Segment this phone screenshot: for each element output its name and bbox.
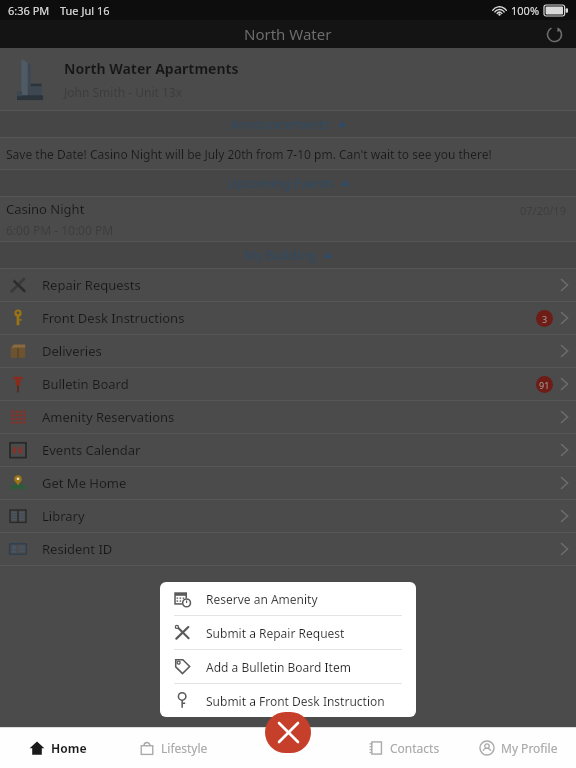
button[interactable]: My Building	[0, 242, 576, 268]
button[interactable]: Contacts	[346, 727, 461, 768]
button[interactable]: Home	[0, 727, 116, 768]
staticText: Add a Bulletin Board Item	[206, 659, 351, 675]
button[interactable]: Submit a Repair Request	[160, 616, 416, 649]
staticText: Casino Night	[6, 200, 85, 218]
button[interactable]: Close menu	[265, 712, 311, 753]
button[interactable]: Announcements	[0, 111, 576, 137]
staticText: Submit a Front Desk Instruction	[206, 693, 385, 709]
staticText: Tue Jul 16	[60, 3, 110, 18]
staticText: Contacts	[390, 740, 440, 756]
staticText: My Profile	[501, 740, 558, 756]
button[interactable]: Casino Night	[0, 197, 576, 241]
button[interactable]: Save the Date! Casino Night will be July…	[0, 138, 576, 169]
staticText: My Building	[244, 246, 317, 264]
button[interactable]: My Profile	[461, 727, 576, 768]
button[interactable]: Repair Requests	[0, 269, 576, 301]
button[interactable]: Bulletin Board	[0, 368, 576, 400]
staticText: North Water	[244, 24, 332, 44]
staticText: 91	[539, 379, 550, 391]
staticText: Announcements	[230, 115, 331, 133]
button[interactable]: North Water Apartments	[0, 48, 576, 110]
staticText: Upcoming Events	[227, 174, 334, 192]
staticText: Deliveries	[42, 342, 102, 360]
button[interactable]: Lifestyle	[116, 727, 231, 768]
staticText: Events Calendar	[42, 441, 141, 459]
button[interactable]: Library	[0, 500, 576, 532]
staticText: 07/20/19	[520, 203, 566, 218]
button[interactable]: Events Calendar	[0, 434, 576, 466]
staticText: Get Me Home	[42, 474, 127, 492]
staticText: Library	[42, 507, 85, 525]
staticText: 6:36 PM	[8, 3, 50, 18]
staticText: Submit a Repair Request	[206, 625, 345, 641]
staticText: Amenity Reservations	[42, 408, 175, 426]
staticText: Repair Requests	[42, 276, 141, 294]
staticText: Front Desk Instructions	[42, 309, 185, 327]
button[interactable]: Upcoming Events	[0, 170, 576, 196]
staticText: Reserve an Amenity	[206, 591, 318, 607]
staticText: 100%	[511, 3, 540, 18]
button[interactable]: Get Me Home	[0, 467, 576, 499]
button[interactable]: Front Desk Instructions	[0, 302, 576, 334]
staticText: John Smith - Unit 13x	[64, 84, 183, 100]
button[interactable]: Submit a Front Desk Instruction	[160, 684, 416, 717]
staticText: Home	[51, 740, 87, 756]
staticText: Resident ID	[42, 540, 113, 558]
staticText: 3	[542, 313, 548, 325]
staticText: North Water Apartments	[64, 59, 239, 78]
button[interactable]: Refresh	[542, 22, 566, 46]
button[interactable]: Deliveries	[0, 335, 576, 367]
staticText: 6:00 PM - 10:00 PM	[6, 222, 114, 238]
staticText: Save the Date! Casino Night will be July…	[6, 146, 492, 162]
button[interactable]: Add a Bulletin Board Item	[160, 650, 416, 683]
button[interactable]: Resident ID	[0, 533, 576, 565]
button[interactable]: Reserve an Amenity	[160, 582, 416, 615]
staticText: Lifestyle	[161, 740, 208, 756]
button[interactable]: Amenity Reservations	[0, 401, 576, 433]
staticText: Bulletin Board	[42, 375, 129, 393]
